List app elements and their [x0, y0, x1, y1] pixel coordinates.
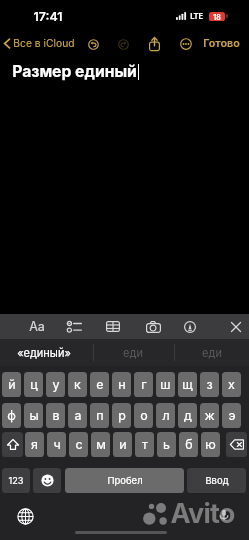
button[interactable]: Table [101, 314, 125, 339]
staticText: х [228, 377, 235, 392]
button[interactable]: Checklist [63, 314, 87, 339]
button[interactable]: м [91, 432, 110, 457]
staticText: еди [202, 346, 222, 359]
staticText: я [31, 437, 38, 452]
staticText: г [141, 377, 147, 392]
staticText: Ввод [205, 475, 229, 486]
button[interactable]: п [90, 403, 109, 428]
staticText: 123 [8, 475, 24, 486]
button[interactable]: 123 [2, 468, 30, 493]
staticText: з [206, 377, 213, 392]
staticText: ш [160, 377, 171, 392]
button[interactable]: ч [47, 432, 66, 457]
staticText: т [142, 437, 148, 452]
staticText: р [118, 408, 126, 423]
button[interactable]: еди [93, 339, 173, 366]
button[interactable]: у [46, 372, 65, 397]
staticText: б [185, 437, 193, 452]
button[interactable]: Undo [84, 34, 102, 54]
button[interactable]: Ввод [187, 468, 246, 493]
button[interactable]: в [46, 403, 65, 428]
button[interactable]: с [69, 432, 88, 457]
button[interactable]: е [90, 372, 109, 397]
button[interactable]: Shift [2, 432, 23, 457]
staticText: е [96, 377, 104, 392]
staticText: д [184, 408, 192, 423]
button[interactable]: ц [24, 372, 43, 397]
staticText: ц [30, 377, 38, 392]
button[interactable]: ш [156, 372, 175, 397]
button[interactable]: и [113, 432, 132, 457]
staticText: Пробел [107, 475, 143, 486]
staticText: м [96, 437, 106, 452]
staticText: н [118, 377, 126, 392]
button[interactable]: к [68, 372, 87, 397]
staticText: 18 [213, 13, 221, 21]
button[interactable]: ф [2, 403, 21, 428]
button[interactable]: я [25, 432, 44, 457]
button[interactable]: Redo [114, 34, 132, 54]
button[interactable]: Пробел [65, 468, 184, 493]
button[interactable]: щ [178, 372, 197, 397]
staticText: Размер единый [12, 62, 137, 81]
staticText: щ [182, 377, 193, 392]
button[interactable]: Emoji [33, 468, 61, 493]
button[interactable]: More [177, 34, 195, 54]
staticText: ч [53, 437, 61, 452]
staticText: а [74, 408, 82, 423]
button[interactable]: н [112, 372, 131, 397]
button[interactable]: Hide keyboard [224, 314, 248, 339]
staticText: э [228, 408, 236, 423]
button[interactable]: э [222, 403, 241, 428]
button[interactable]: Markup [178, 314, 202, 339]
button[interactable]: «единый» [0, 339, 88, 366]
button[interactable]: Dictation [215, 505, 233, 525]
button[interactable]: о [134, 403, 153, 428]
button[interactable]: х [222, 372, 241, 397]
button[interactable]: Text format [25, 314, 49, 339]
staticText: «единый» [17, 346, 71, 359]
staticText: Все в iCloud [13, 37, 75, 49]
button[interactable]: р [112, 403, 131, 428]
staticText: ж [204, 408, 215, 423]
button[interactable]: а [68, 403, 87, 428]
button[interactable]: д [178, 403, 197, 428]
button[interactable]: л [156, 403, 175, 428]
button[interactable]: й [2, 372, 21, 397]
staticText: Готово [203, 37, 240, 50]
staticText: Avito [170, 497, 235, 530]
button[interactable]: ы [24, 403, 43, 428]
button[interactable]: т [135, 432, 154, 457]
button[interactable]: еди [174, 339, 249, 366]
button[interactable]: Все в iCloud [0, 36, 79, 50]
button[interactable]: Share [145, 34, 163, 54]
staticText: LTE [190, 12, 203, 21]
staticText: еди [123, 346, 143, 359]
staticText: 17:41 [33, 9, 63, 24]
staticText: с [75, 437, 83, 452]
staticText: п [96, 408, 104, 423]
staticText: о [140, 408, 148, 423]
button[interactable]: ж [200, 403, 219, 428]
button[interactable]: Switch keyboard [14, 505, 36, 527]
staticText: ы [29, 408, 39, 423]
button[interactable]: г [134, 372, 153, 397]
staticText: й [8, 377, 16, 392]
button[interactable]: б [179, 432, 198, 457]
staticText: л [162, 408, 170, 423]
button[interactable]: Готово [199, 34, 244, 52]
staticText: к [74, 377, 81, 392]
button[interactable]: з [200, 372, 219, 397]
staticText: ф [7, 408, 16, 423]
staticText: Aa [29, 319, 45, 334]
button[interactable]: ь [157, 432, 176, 457]
staticText: ю [205, 437, 216, 452]
staticText: в [52, 408, 60, 423]
staticText: у [52, 377, 60, 392]
staticText: и [119, 437, 127, 452]
button[interactable]: ю [201, 432, 220, 457]
staticText: ь [163, 437, 170, 452]
button[interactable]: Camera [141, 314, 165, 339]
button[interactable]: Backspace [226, 432, 247, 457]
